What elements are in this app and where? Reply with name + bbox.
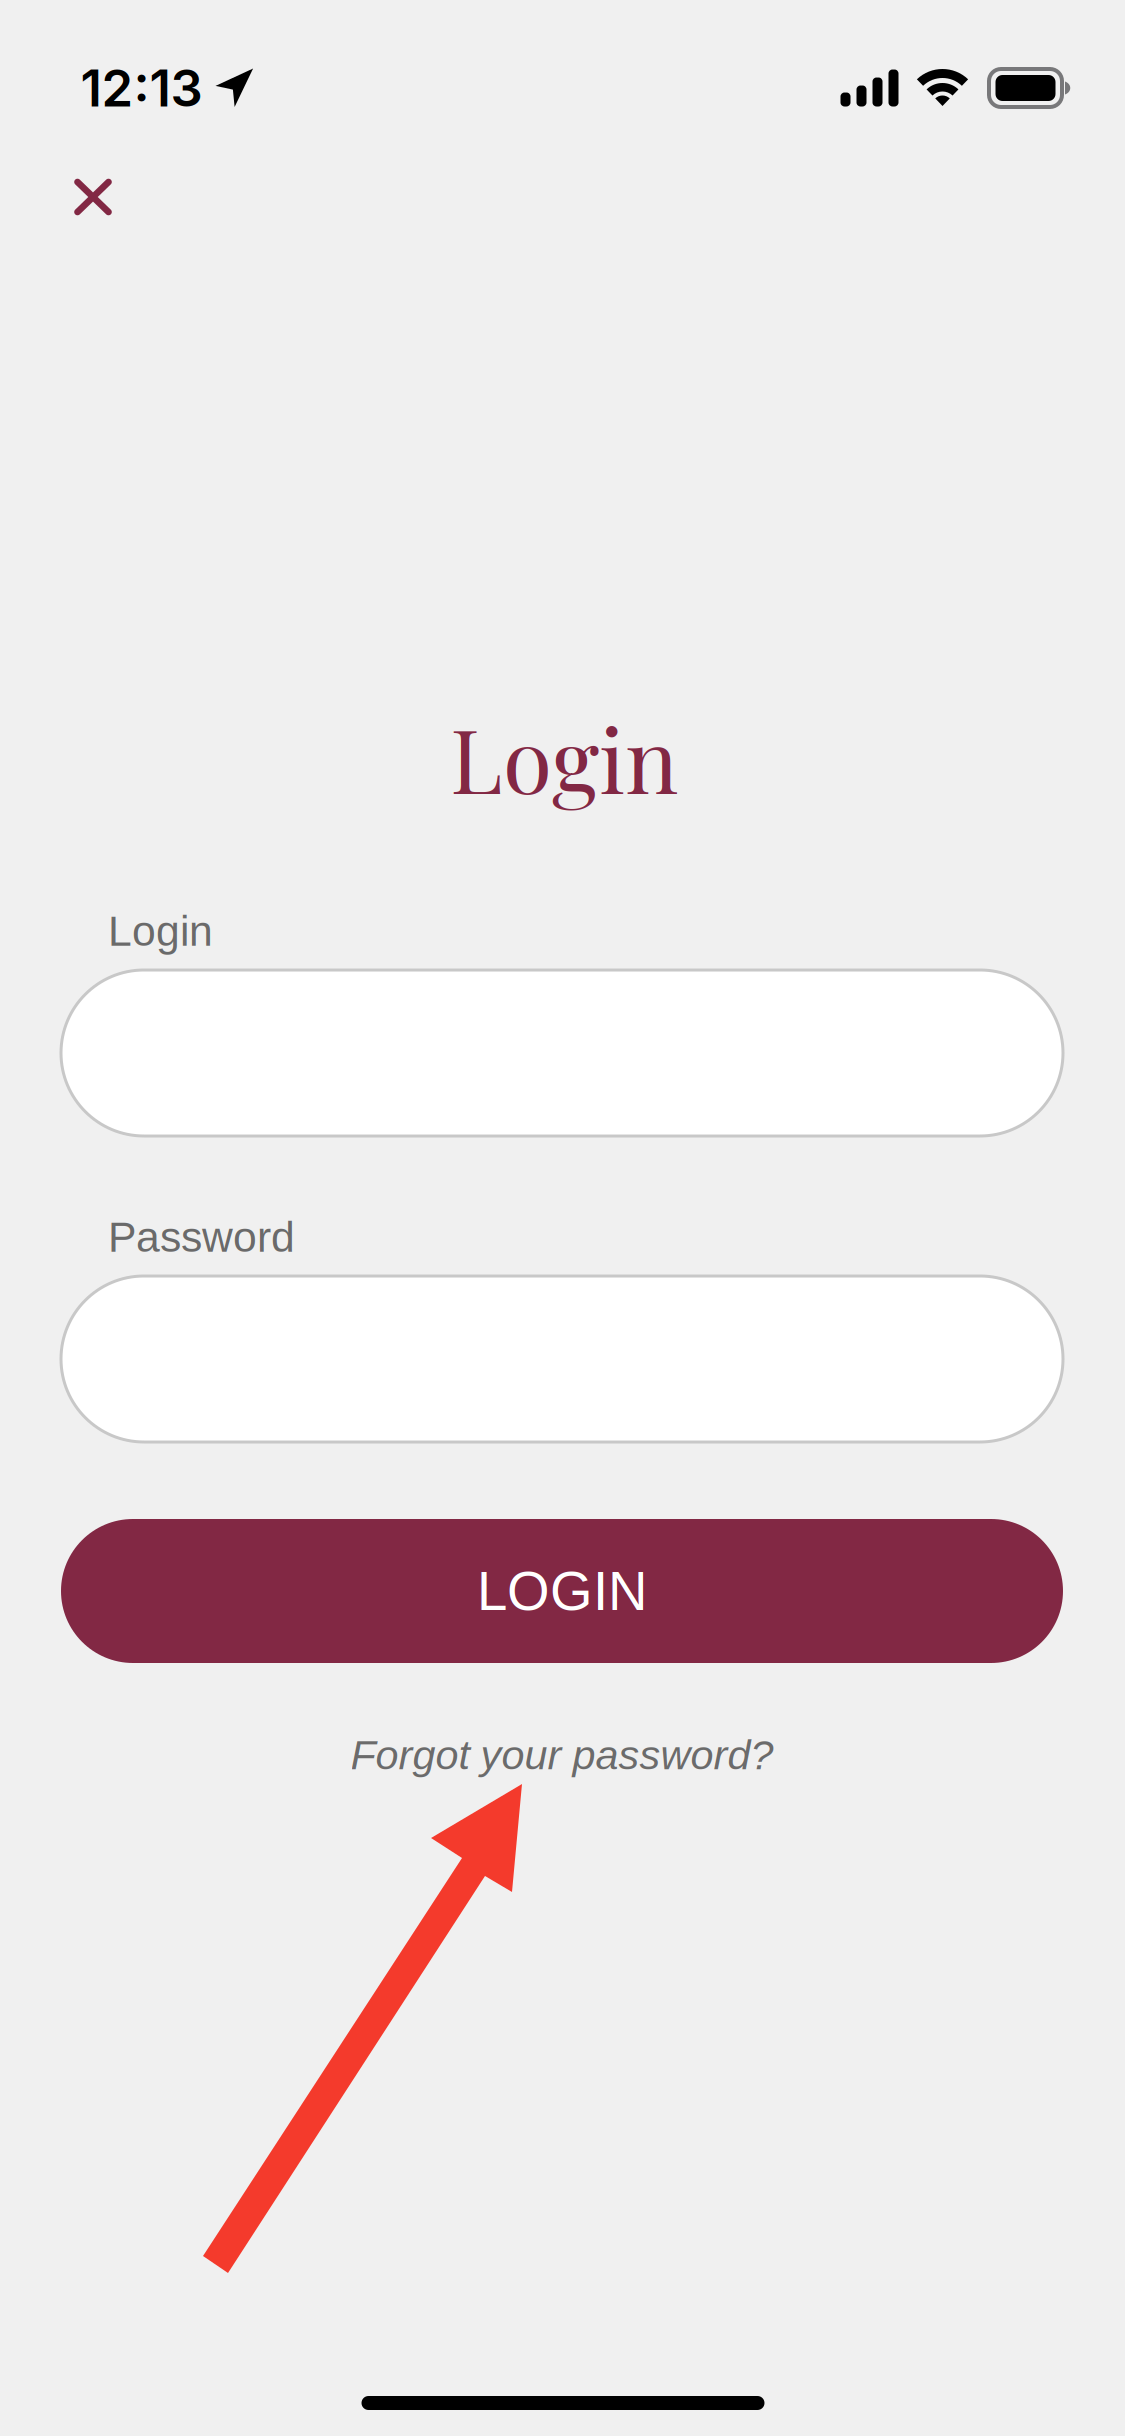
staticText: 12:13 [80, 57, 202, 119]
button[interactable]: Login [61, 970, 1063, 1136]
staticText: Login [108, 907, 213, 955]
staticText: Password [108, 1213, 295, 1261]
button[interactable]: Close [43, 149, 143, 245]
staticText: LOGIN [477, 1560, 647, 1622]
staticText: Login [450, 697, 678, 817]
staticText: Forgot your password? [350, 1732, 773, 1778]
button[interactable]: Password [61, 1276, 1063, 1442]
button[interactable]: Forgot your password? [252, 1717, 872, 1793]
button[interactable]: LOGIN [61, 1519, 1063, 1663]
